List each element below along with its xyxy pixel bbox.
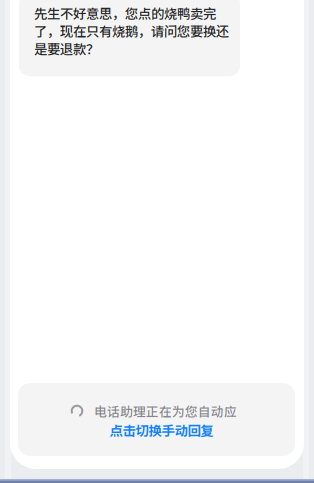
- staticText: 电话助理正在为您自动应: [94, 402, 237, 420]
- button[interactable]: 点击切换手动回复: [104, 419, 208, 440]
- staticText: 先生不好意思，您点的烧鸭卖完了，现在只有烧鹅，请问您要换还是要退款？: [34, 4, 229, 57]
- staticText: 点击切换手动回复: [109, 420, 213, 440]
